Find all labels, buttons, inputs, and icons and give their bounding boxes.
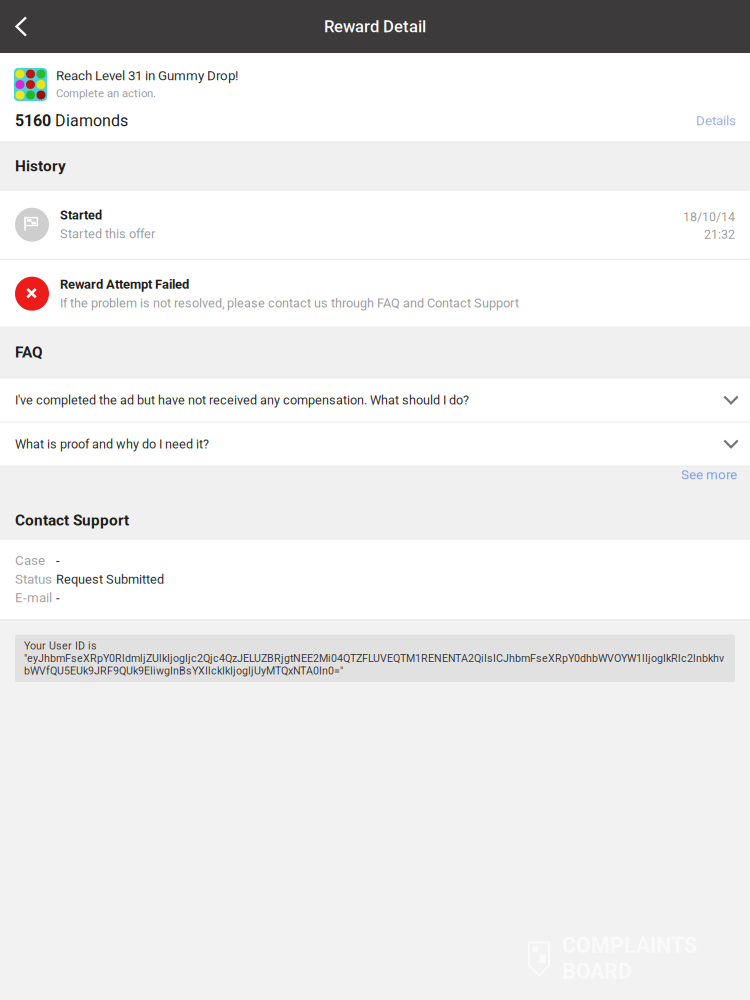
button[interactable]: What is proof and why do I need it?: [0, 423, 750, 466]
staticText: See more: [681, 467, 737, 482]
staticText: What is proof and why do I need it?: [15, 437, 209, 452]
staticText: Details: [696, 113, 736, 129]
staticText: 5160: [15, 111, 55, 130]
button[interactable]: Back: [0, 0, 43, 53]
staticText: Diamonds: [55, 111, 128, 130]
staticText: FAQ: [15, 343, 43, 361]
staticText: I've completed the ad but have not recei…: [15, 393, 469, 408]
staticText: -: [56, 553, 60, 568]
staticText: History: [15, 157, 66, 175]
staticText: Request Submitted: [56, 572, 164, 587]
button[interactable]: Details: [682, 107, 750, 135]
staticText: bWVfQU5EUk9JRF9QUk9EIiwgInBsYXIlckIkIjog…: [24, 665, 343, 677]
staticText: COMPLAINTS: [562, 933, 697, 958]
staticText: BOARD: [562, 959, 632, 984]
staticText: E-mail: [15, 590, 52, 605]
staticText: 18/10/14: [683, 210, 735, 224]
staticText: Reward Detail: [324, 17, 426, 36]
staticText: "eyJhbmFseXRpY0RldmljZUlkIjogIjc2Qjc4QzJ…: [24, 652, 724, 665]
staticText: Complete an action.: [56, 87, 156, 100]
staticText: If the problem is not resolved, please c…: [60, 296, 519, 311]
staticText: Reach Level 31 in Gummy Drop!: [56, 68, 238, 84]
staticText: 21:32: [704, 227, 735, 242]
staticText: Contact Support: [15, 511, 129, 529]
staticText: Started: [60, 208, 102, 222]
staticText: -: [56, 590, 60, 605]
staticText: Status: [15, 571, 52, 587]
button[interactable]: See more: [669, 467, 750, 501]
staticText: Reward Attempt Failed: [60, 277, 189, 292]
staticText: Your User ID is: [24, 640, 97, 652]
staticText: Case: [15, 553, 45, 568]
button[interactable]: I've completed the ad but have not recei…: [0, 379, 750, 422]
staticText: Started this offer: [60, 226, 155, 241]
